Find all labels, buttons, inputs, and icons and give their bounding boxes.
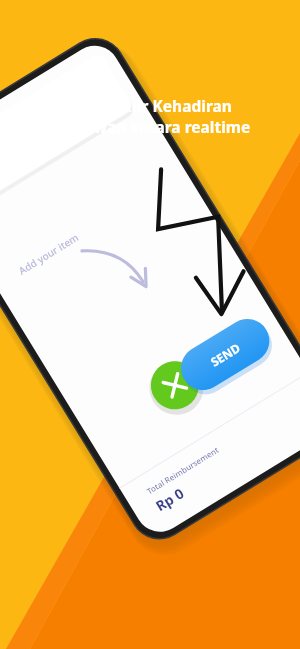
button[interactable]: Mengukur Kehadiran karyawan secara realt…: [0, 0, 300, 649]
